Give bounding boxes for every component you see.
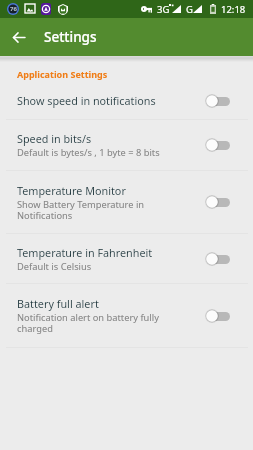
staticText: Default is Celsius xyxy=(17,260,92,273)
staticText: Show Battery Temperature in Notification… xyxy=(17,198,145,222)
staticText: Battery full alert xyxy=(17,296,99,311)
button[interactable]: Temperature Monitor xyxy=(0,171,253,233)
staticText: Application Settings xyxy=(17,68,108,80)
staticText: G xyxy=(186,3,193,16)
button[interactable]: Back xyxy=(0,18,38,56)
staticText: Settings xyxy=(44,28,97,46)
staticText: Show speed in notifications xyxy=(17,93,156,108)
button[interactable]: Speed in bits/s xyxy=(0,120,253,170)
staticText: Notification alert on battery fully char… xyxy=(17,311,159,335)
staticText: 76 xyxy=(10,5,17,13)
staticText: 12:18 xyxy=(221,3,246,16)
button[interactable]: Battery full alert xyxy=(0,284,253,347)
staticText: Temperature in Fahrenheit xyxy=(17,245,153,260)
staticText: Speed in bits/s xyxy=(17,131,92,146)
staticText: 3G xyxy=(157,3,170,16)
staticText: Default is bytes/s , 1 byte = 8 bits xyxy=(17,146,160,159)
button[interactable]: Show speed in notifications xyxy=(0,82,253,119)
button[interactable]: Temperature in Fahrenheit xyxy=(0,234,253,283)
staticText: Temperature Monitor xyxy=(17,183,126,198)
